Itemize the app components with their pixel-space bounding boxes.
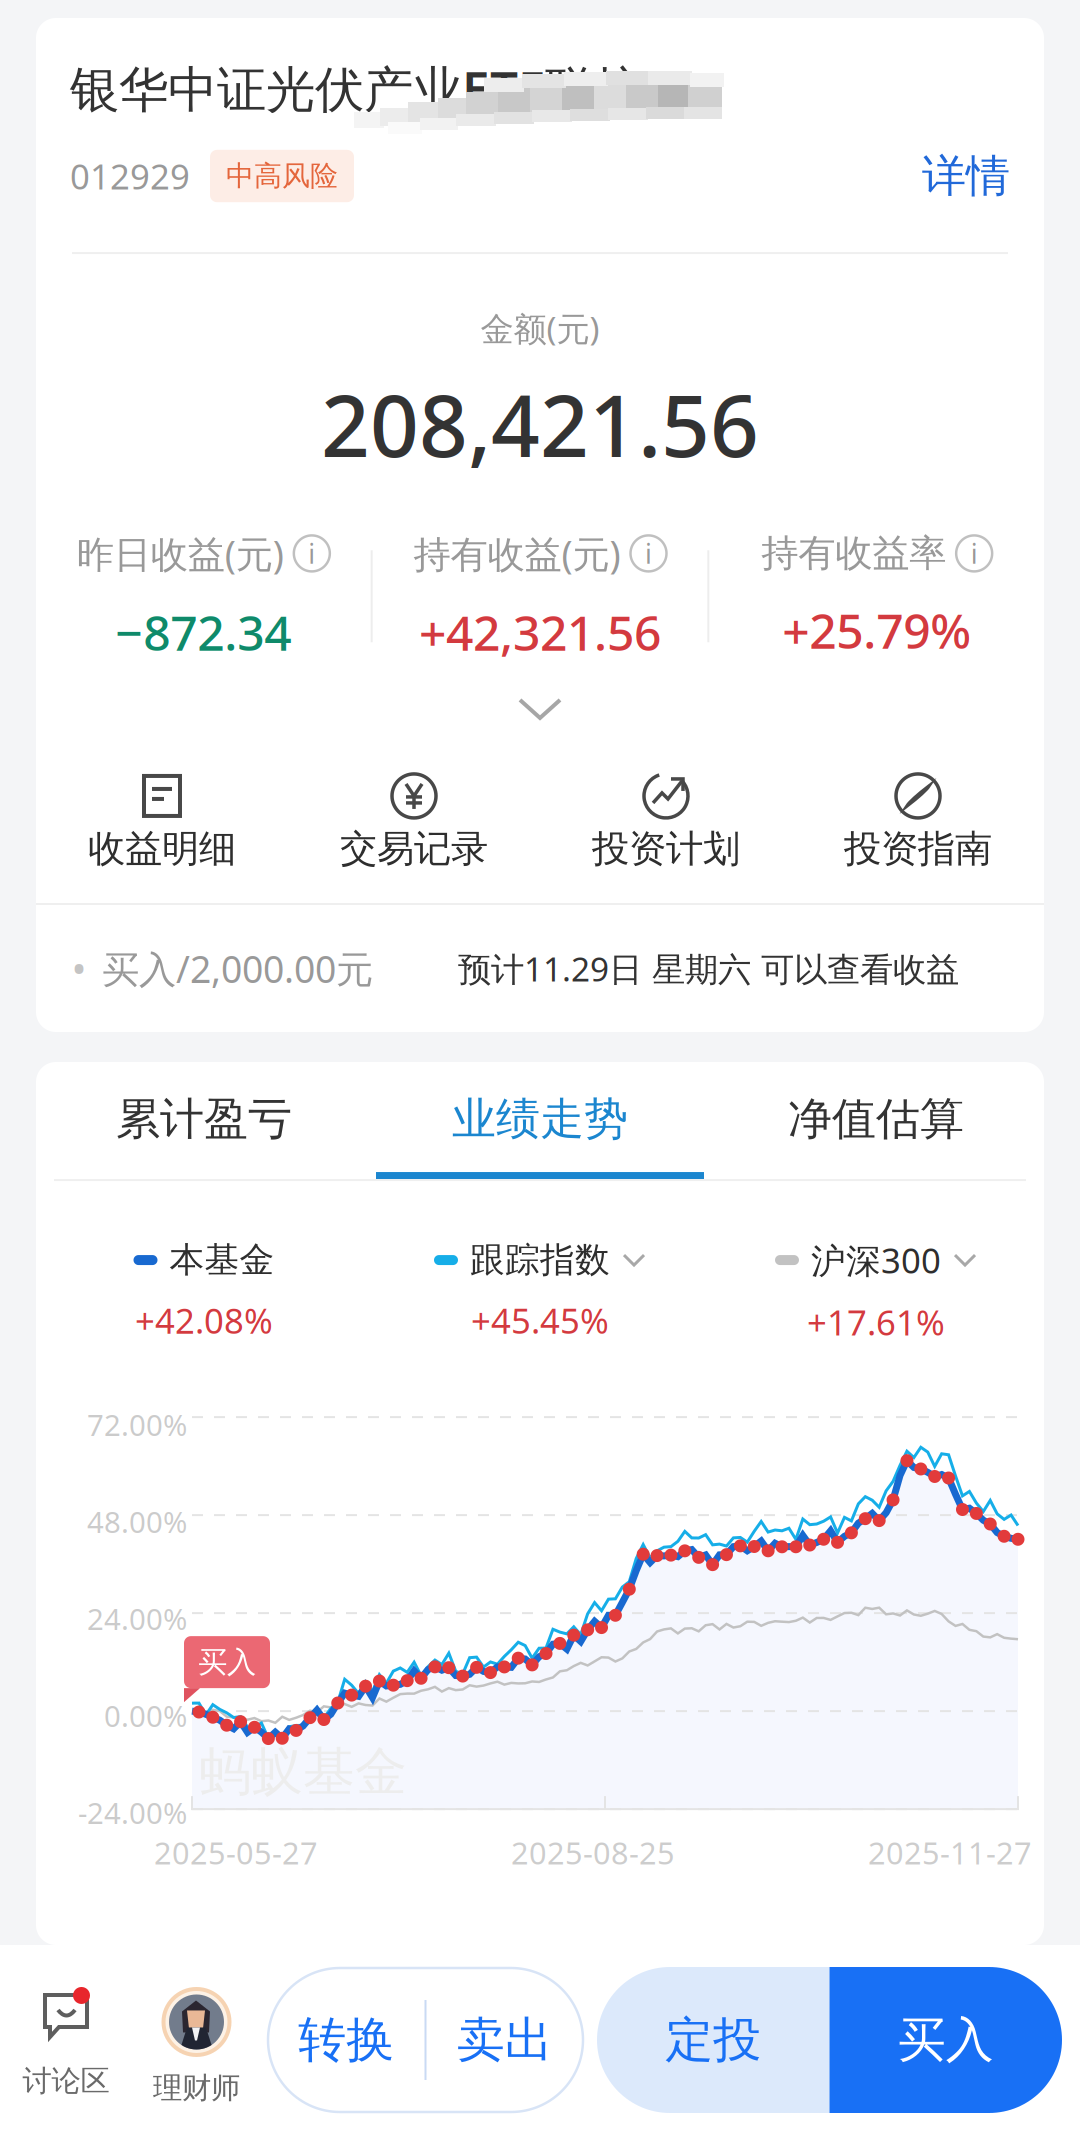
staticText: 0.00%	[104, 1696, 187, 1735]
staticText: 收益明细	[88, 826, 236, 872]
staticText: 012929	[70, 153, 190, 199]
button[interactable]: 交易记录	[288, 772, 540, 872]
staticText: 业绩走势	[452, 1092, 628, 1146]
button[interactable]: 收益明细	[36, 772, 288, 872]
button[interactable]: 转换	[268, 1968, 424, 2112]
button[interactable]: 净值估算	[708, 1092, 1044, 1179]
staticText: 2025-05-27	[154, 1832, 318, 1873]
staticText: 银华中证光伏产业ETF联接C	[70, 55, 674, 121]
staticText: 2025-08-25	[511, 1832, 675, 1873]
button[interactable]: 讨论区	[2, 1945, 130, 2135]
button[interactable]: 详情	[922, 149, 1010, 203]
staticText: 投资计划	[592, 826, 740, 872]
staticText: 详情	[922, 149, 1010, 203]
staticText: +42,321.56	[419, 600, 661, 664]
staticText: 本基金	[169, 1239, 274, 1281]
button[interactable]: 买入	[829, 1967, 1062, 2113]
staticText: 2025-11-27	[868, 1832, 1032, 1873]
button[interactable]: 卖出	[426, 1968, 583, 2112]
staticText: 48.00%	[87, 1502, 187, 1541]
staticText: 跟踪指数	[470, 1239, 610, 1281]
button[interactable]: 业绩走势	[372, 1092, 708, 1179]
staticText: 交易记录	[340, 826, 488, 872]
staticText: 净值估算	[788, 1092, 964, 1146]
staticText: +25.79%	[782, 598, 971, 662]
button[interactable]: •	[36, 905, 1044, 1032]
staticText: 预计11.29日 星期六 可以查看收益	[458, 946, 959, 991]
staticText: 昨日收益(元)	[77, 529, 284, 578]
staticText: 72.00%	[87, 1405, 187, 1444]
staticText: 买入	[898, 2010, 994, 2069]
staticText: i	[645, 536, 652, 571]
staticText: +42.08%	[135, 1297, 273, 1343]
staticText: +45.45%	[471, 1297, 609, 1343]
staticText: i	[308, 536, 315, 571]
staticText: 累计盈亏	[116, 1092, 292, 1146]
button[interactable]: 投资指南	[792, 772, 1044, 872]
button[interactable]: 理财师	[130, 1945, 263, 2135]
staticText: •	[71, 942, 86, 995]
staticText: 208,421.56	[321, 367, 759, 481]
staticText: 中高风险	[226, 159, 338, 193]
button[interactable]: 投资计划	[540, 772, 792, 872]
staticText: 买入	[198, 1644, 256, 1680]
staticText: 沪深300	[811, 1237, 941, 1283]
button[interactable]: 定投	[597, 1967, 829, 2113]
staticText: 买入/2,000.00元	[102, 944, 373, 993]
staticText: 卖出	[457, 2010, 553, 2069]
staticText: 持有收益(元)	[413, 529, 620, 578]
staticText: 24.00%	[87, 1599, 187, 1638]
staticText: 理财师	[153, 2070, 240, 2106]
staticText: i	[971, 536, 978, 571]
button[interactable]: 累计盈亏	[36, 1092, 372, 1179]
staticText: −872.34	[115, 600, 291, 664]
staticText: 讨论区	[22, 2063, 109, 2099]
staticText: -24.00%	[78, 1793, 187, 1832]
staticText: 持有收益率	[761, 530, 946, 576]
staticText: 蚂蚁基金	[199, 1740, 407, 1804]
staticText: 定投	[665, 2010, 761, 2069]
staticText: 转换	[298, 2010, 394, 2069]
staticText: 投资指南	[844, 826, 992, 872]
staticText: 金额(元)	[480, 306, 599, 350]
button[interactable]: 展开	[36, 676, 1044, 744]
staticText: +17.61%	[807, 1299, 945, 1345]
